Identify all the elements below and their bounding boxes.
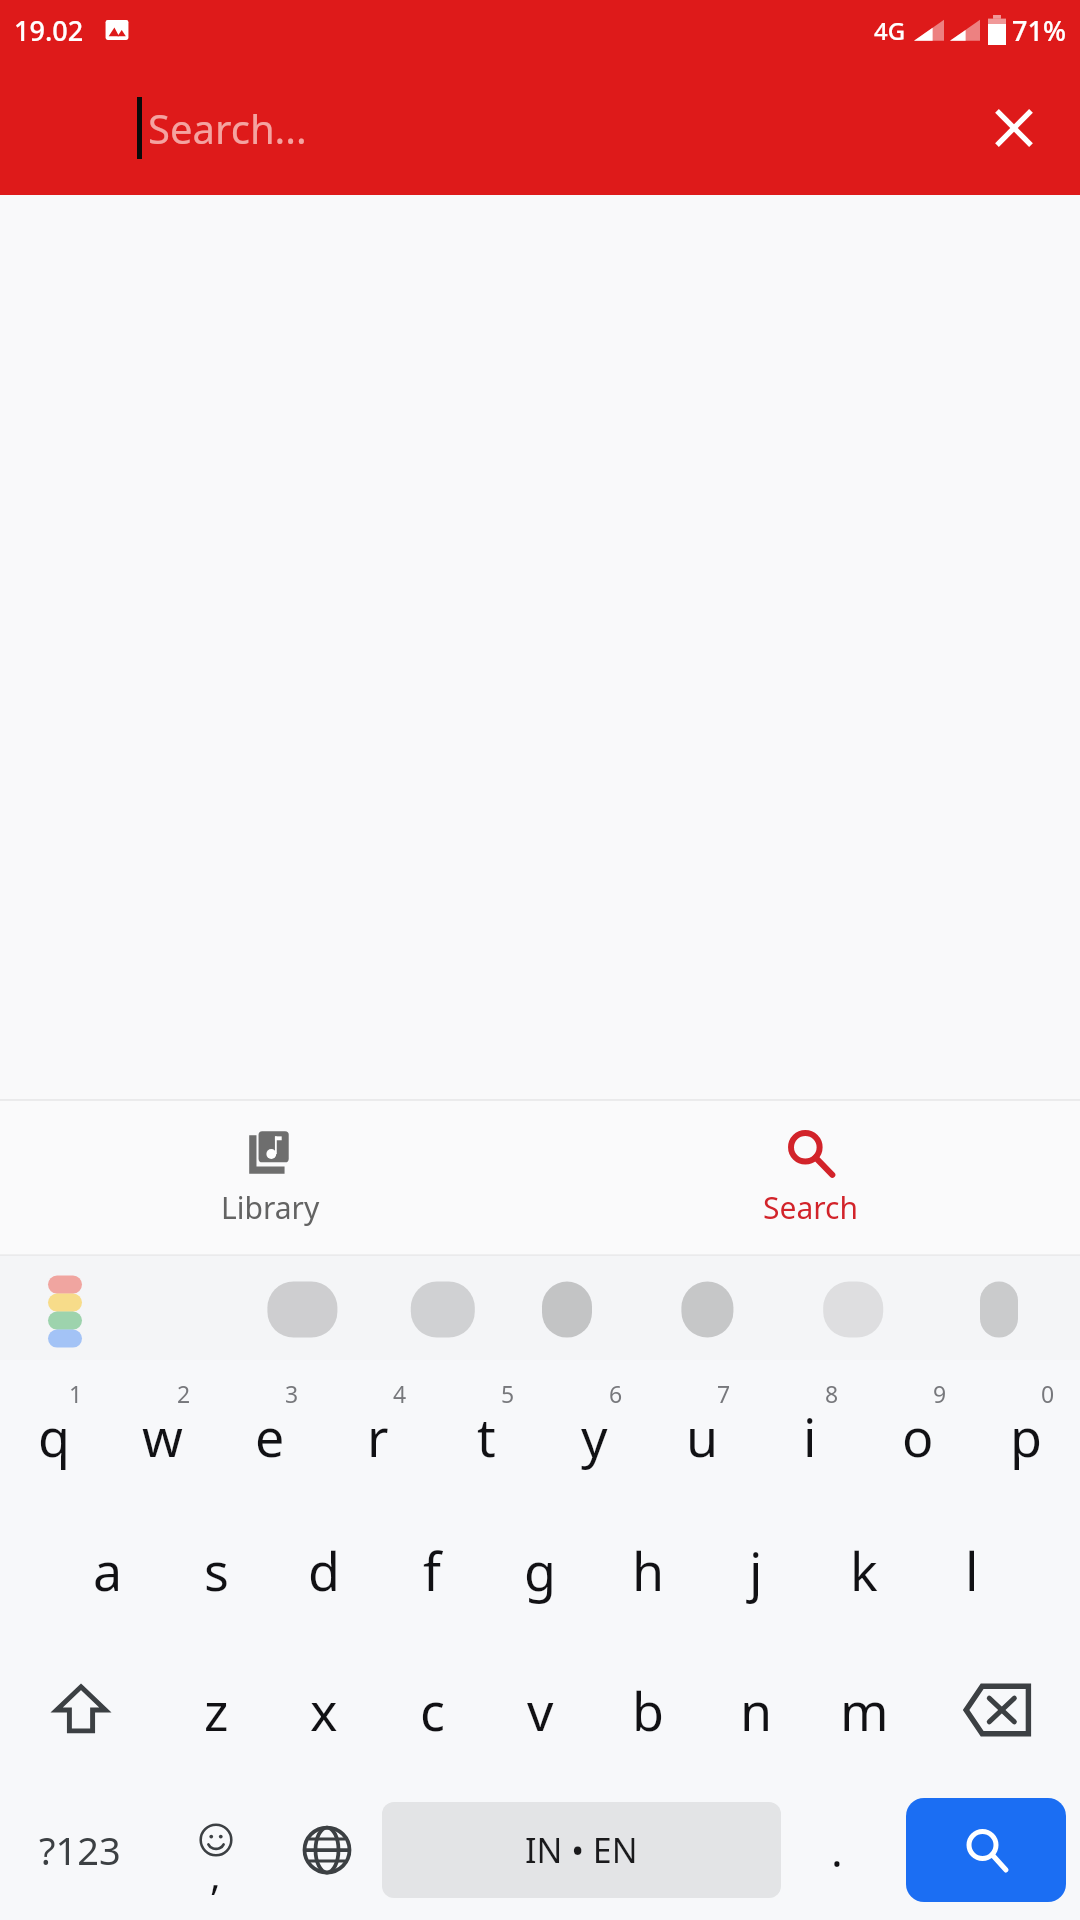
staticText: ?123 xyxy=(39,1824,121,1876)
staticText: Library xyxy=(221,1187,320,1228)
staticText: y xyxy=(581,1401,608,1472)
button[interactable]: s xyxy=(162,1500,270,1640)
staticText: m xyxy=(840,1675,889,1746)
staticText: x xyxy=(310,1675,338,1746)
button[interactable]: 7 xyxy=(648,1360,756,1500)
staticText: w xyxy=(142,1401,183,1472)
button[interactable]: c xyxy=(378,1640,486,1780)
staticText: h xyxy=(632,1535,665,1606)
button[interactable]: IN • EN xyxy=(382,1802,781,1898)
button[interactable]: Close search xyxy=(966,80,1062,176)
button[interactable]: x xyxy=(270,1640,378,1780)
staticText: g xyxy=(524,1535,556,1606)
staticText: 19.02 xyxy=(14,12,84,49)
staticText: . xyxy=(831,1820,843,1880)
staticText: p xyxy=(1010,1401,1042,1472)
staticText: z xyxy=(204,1675,229,1746)
button[interactable]: z xyxy=(162,1640,270,1780)
button[interactable]: d xyxy=(270,1500,378,1640)
staticText: a xyxy=(93,1535,123,1606)
staticText: t xyxy=(477,1401,496,1472)
staticText: Search xyxy=(763,1187,858,1228)
staticText: j xyxy=(749,1535,763,1606)
button[interactable]: . xyxy=(781,1780,892,1920)
staticText: 1 xyxy=(69,1378,83,1409)
staticText: 8 xyxy=(825,1378,839,1409)
button[interactable]: Search xyxy=(540,1100,1080,1255)
button[interactable]: 9 xyxy=(864,1360,972,1500)
staticText: b xyxy=(632,1675,664,1746)
button[interactable]: 8 xyxy=(756,1360,864,1500)
button[interactable]: 2 xyxy=(108,1360,216,1500)
staticText: 9 xyxy=(933,1378,947,1409)
staticText: f xyxy=(423,1535,441,1606)
staticText: u xyxy=(686,1401,719,1472)
staticText: s xyxy=(204,1535,229,1606)
staticText: 4 xyxy=(393,1378,407,1409)
button[interactable]: v xyxy=(486,1640,594,1780)
button[interactable]: j xyxy=(702,1500,810,1640)
staticText: q xyxy=(38,1401,70,1472)
button[interactable]: l xyxy=(918,1500,1026,1640)
button[interactable]: k xyxy=(810,1500,918,1640)
button[interactable]: Emoji xyxy=(160,1780,271,1920)
button[interactable]: Library xyxy=(0,1100,540,1255)
button[interactable]: m xyxy=(810,1640,918,1780)
staticText: 4G xyxy=(874,14,906,47)
button[interactable]: Search xyxy=(906,1798,1066,1902)
staticText: 6 xyxy=(609,1378,623,1409)
button[interactable]: n xyxy=(702,1640,810,1780)
staticText: d xyxy=(308,1535,340,1606)
button[interactable]: g xyxy=(486,1500,594,1640)
staticText: 7 xyxy=(717,1378,731,1409)
staticText: IN • EN xyxy=(525,1827,638,1873)
staticText: n xyxy=(740,1675,773,1746)
staticText: c xyxy=(420,1675,445,1746)
button[interactable]: f xyxy=(378,1500,486,1640)
staticText: k xyxy=(850,1535,878,1606)
staticText: 0 xyxy=(1041,1378,1055,1409)
staticText: , xyxy=(210,1847,221,1901)
staticText: 71% xyxy=(1012,12,1066,49)
button[interactable]: 5 xyxy=(432,1360,540,1500)
button[interactable]: 4 xyxy=(324,1360,432,1500)
button[interactable]: Shift xyxy=(0,1640,162,1780)
staticText: 5 xyxy=(501,1378,515,1409)
staticText: r xyxy=(367,1401,389,1472)
button[interactable]: Change language xyxy=(271,1780,382,1920)
button[interactable]: 6 xyxy=(540,1360,648,1500)
staticText: 3 xyxy=(285,1378,299,1409)
staticText: v xyxy=(527,1675,554,1746)
button[interactable]: 1 xyxy=(0,1360,108,1500)
button[interactable]: ?123 xyxy=(0,1780,160,1920)
button[interactable]: h xyxy=(594,1500,702,1640)
button[interactable]: a xyxy=(54,1500,162,1640)
staticText: i xyxy=(803,1401,817,1472)
staticText: 2 xyxy=(177,1378,191,1409)
staticText: e xyxy=(255,1401,285,1472)
staticText: o xyxy=(902,1401,934,1472)
button[interactable]: b xyxy=(594,1640,702,1780)
button[interactable]: Backspace xyxy=(918,1640,1080,1780)
staticText: l xyxy=(965,1535,979,1606)
button[interactable]: 0 xyxy=(972,1360,1080,1500)
staticText: Search... xyxy=(148,101,307,155)
button[interactable]: 3 xyxy=(216,1360,324,1500)
